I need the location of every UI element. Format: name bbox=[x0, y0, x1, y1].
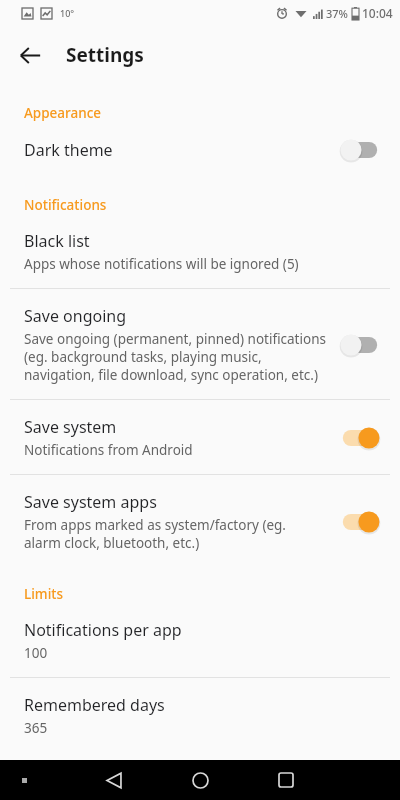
button[interactable]: Back bbox=[8, 33, 52, 77]
staticText: Black list bbox=[24, 230, 90, 252]
staticText: Save system bbox=[24, 416, 117, 438]
staticText: Save system apps bbox=[24, 491, 157, 513]
staticText: Save ongoing bbox=[24, 305, 127, 327]
staticText: 365 bbox=[24, 719, 48, 737]
staticText: 100 bbox=[24, 644, 48, 662]
button[interactable]: Home bbox=[180, 760, 220, 800]
button[interactable]: Recent apps bbox=[266, 760, 306, 800]
staticText: Notifications per app bbox=[24, 619, 182, 641]
button[interactable]: Save system bbox=[0, 400, 400, 474]
button[interactable]: On bbox=[338, 507, 382, 537]
staticText: Remembered days bbox=[24, 694, 165, 716]
staticText: Appearance bbox=[24, 104, 102, 122]
button[interactable]: Black list bbox=[0, 214, 400, 288]
button[interactable]: Notifications per app bbox=[0, 603, 400, 677]
button[interactable]: Back bbox=[94, 760, 134, 800]
button[interactable]: Save ongoing bbox=[0, 289, 400, 399]
staticText: 37% bbox=[326, 6, 348, 21]
staticText: Notifications from Android bbox=[24, 441, 193, 459]
button[interactable]: Off bbox=[338, 330, 382, 360]
staticText: Save ongoing (permanent, pinned) notific… bbox=[24, 330, 326, 384]
staticText: 10:04 bbox=[362, 5, 393, 21]
staticText: Notifications bbox=[24, 196, 107, 214]
staticText: 10° bbox=[60, 7, 75, 19]
staticText: Limits bbox=[24, 585, 64, 603]
button[interactable]: Dark theme bbox=[0, 122, 400, 178]
staticText: Dark theme bbox=[24, 139, 113, 161]
staticText: Settings bbox=[66, 42, 144, 68]
button[interactable]: Off bbox=[338, 135, 382, 165]
staticText: Apps whose notifications will be ignored… bbox=[24, 255, 299, 273]
button[interactable]: Remembered days bbox=[0, 678, 400, 752]
staticText: From apps marked as system/factory (eg. … bbox=[24, 516, 326, 552]
button[interactable]: Save system apps bbox=[0, 475, 400, 567]
button[interactable]: On bbox=[338, 423, 382, 453]
